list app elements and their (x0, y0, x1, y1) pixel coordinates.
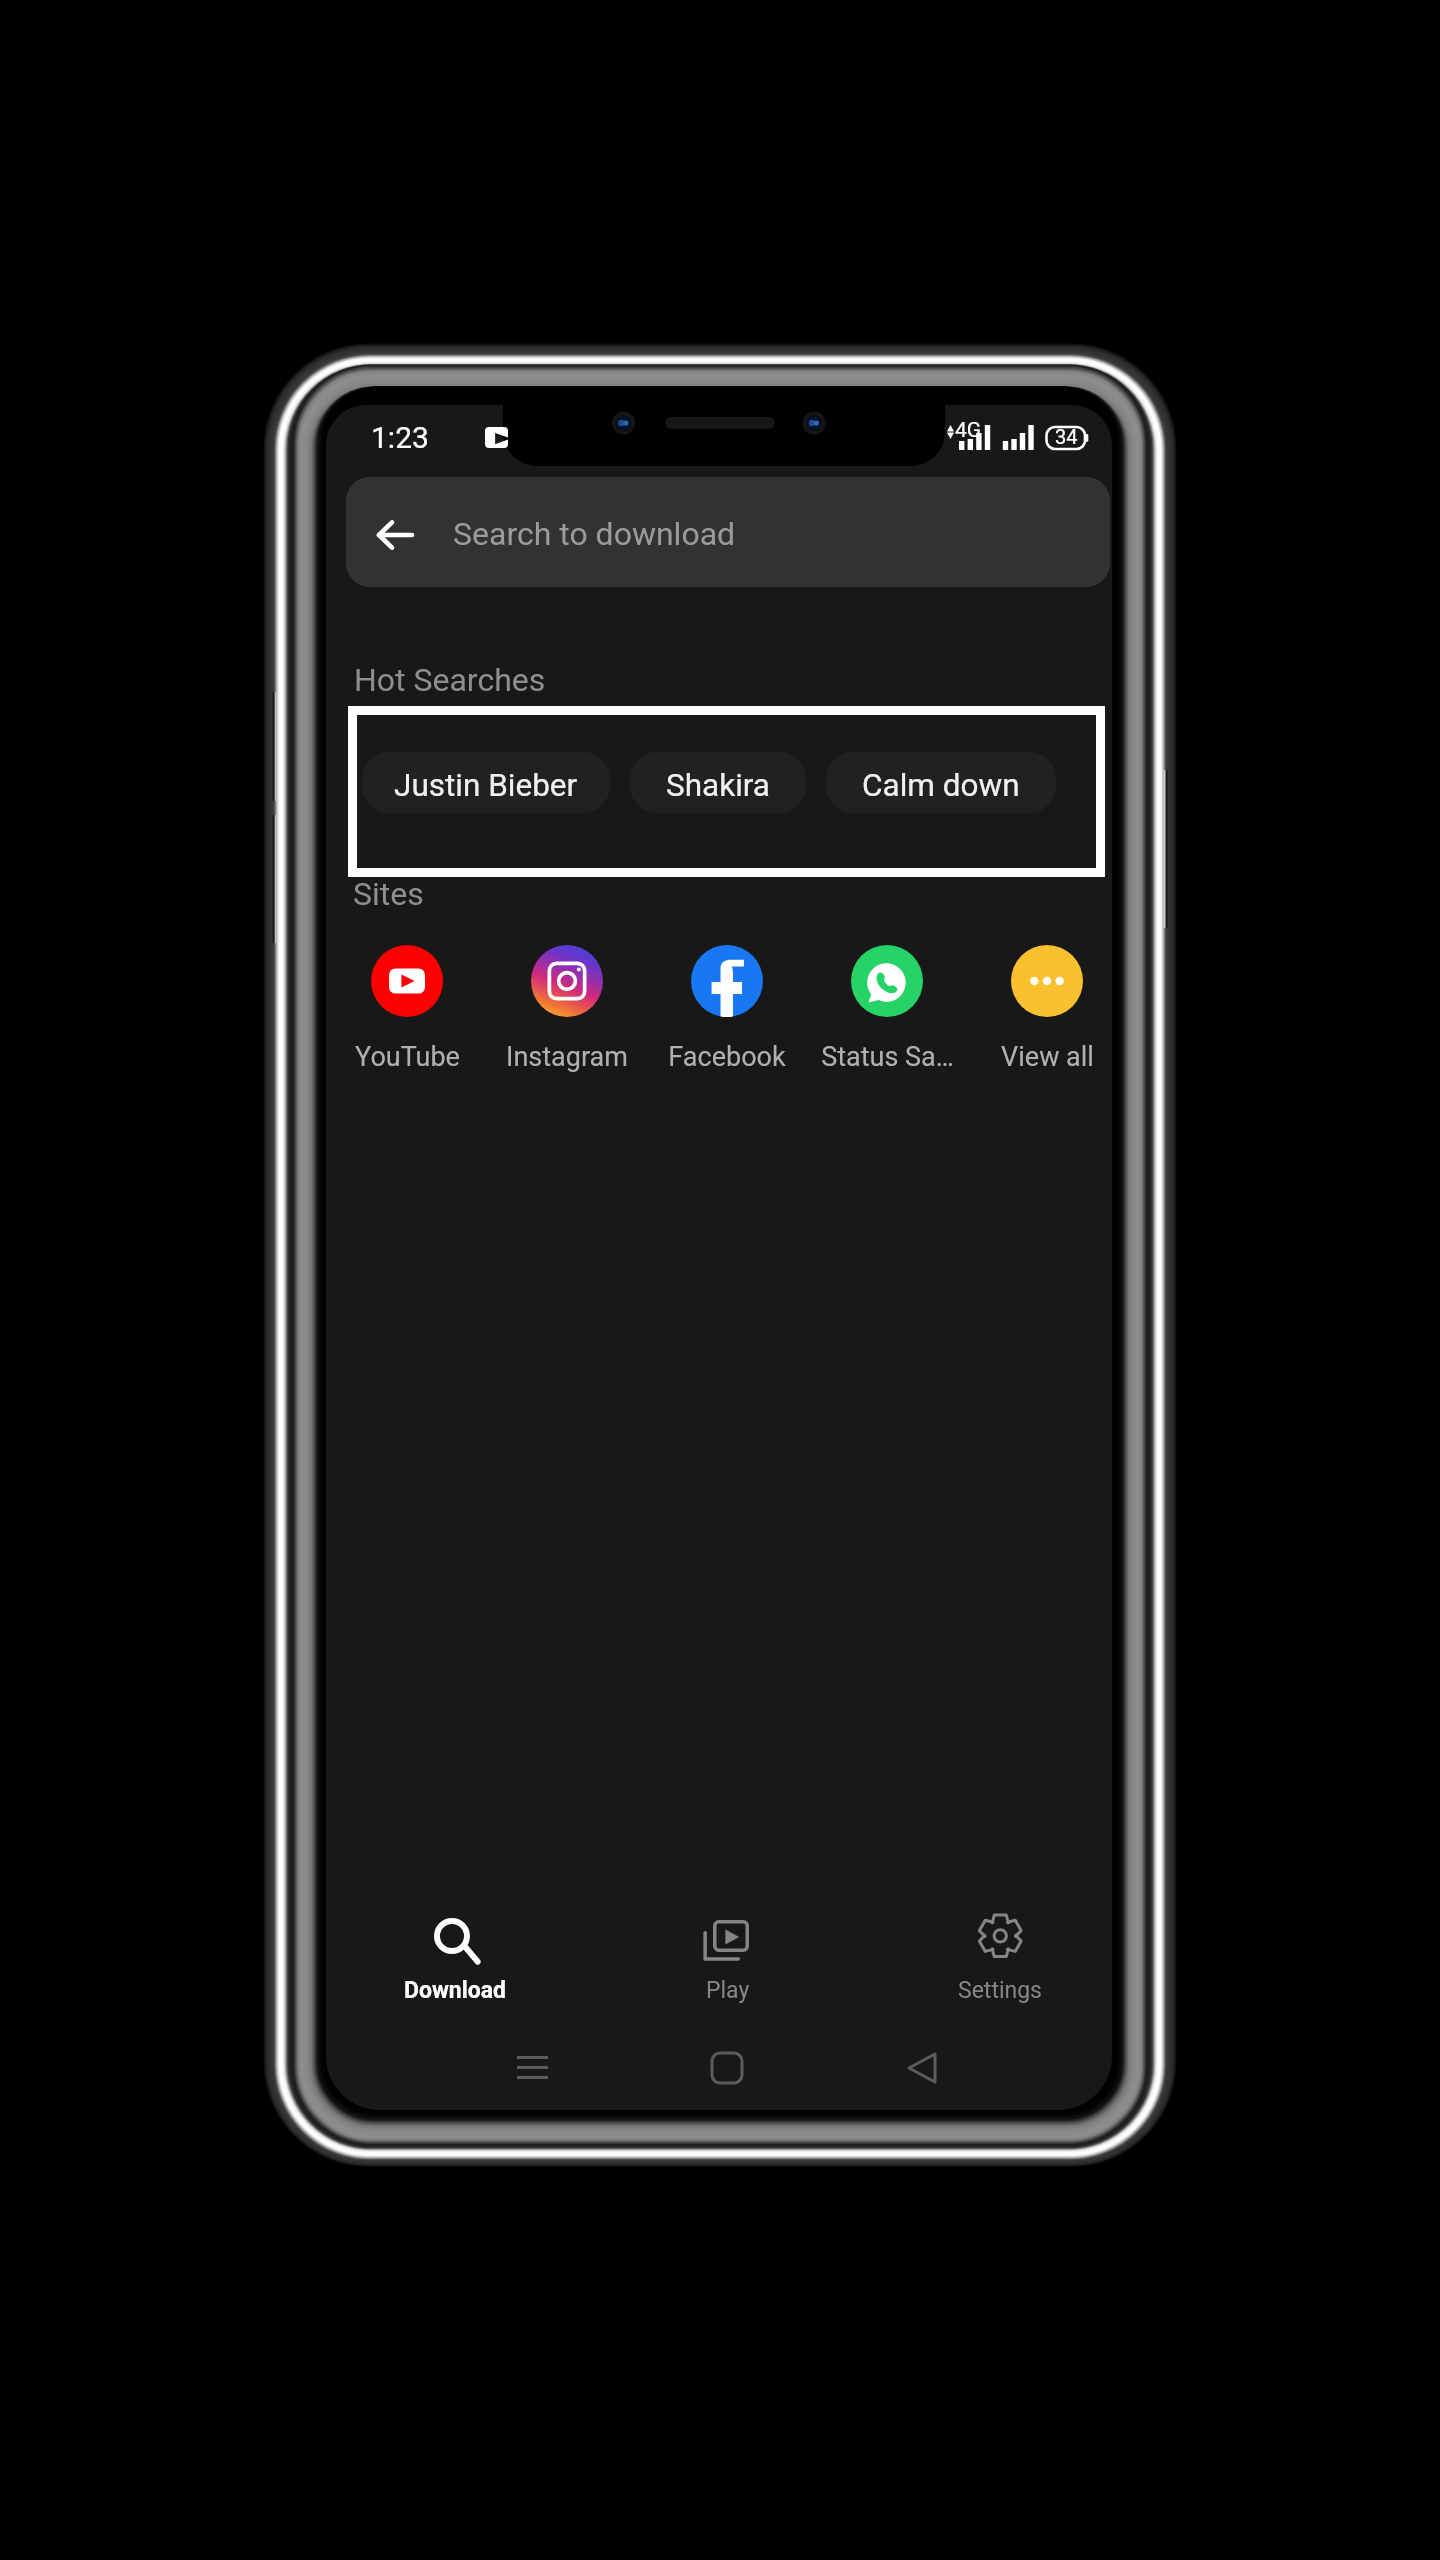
staticText: Shakira (666, 767, 771, 804)
button[interactable]: Back (360, 480, 430, 587)
staticText: Hot Searches (354, 661, 546, 699)
button[interactable]: YouTube (329, 945, 485, 1085)
staticText: Search to download (453, 515, 736, 553)
staticText: 4G (955, 418, 982, 443)
staticText: 34 (1055, 425, 1078, 448)
button[interactable]: Justin Bieber (362, 752, 610, 813)
staticText: Play (706, 1977, 750, 2004)
button[interactable]: Recents (492, 2027, 572, 2107)
staticText: Status Sa… (821, 1041, 954, 1073)
button[interactable]: Download (326, 1893, 585, 2018)
staticText: Download (404, 1977, 507, 2004)
button[interactable]: Calm down (826, 752, 1056, 813)
button[interactable]: Instagram (489, 945, 645, 1085)
button[interactable]: Play (598, 1893, 858, 2018)
button[interactable]: View all (969, 945, 1112, 1085)
staticText: Calm down (862, 767, 1020, 804)
button[interactable]: Shakira (630, 752, 806, 813)
button[interactable]: Status Sa… (809, 945, 965, 1085)
staticText: Justin Bieber (394, 767, 578, 804)
staticText: YouTube (355, 1041, 460, 1073)
staticText: Facebook (668, 1041, 786, 1073)
staticText: Settings (958, 1977, 1042, 2004)
button[interactable]: Home (687, 2028, 767, 2108)
button[interactable]: Settings (870, 1893, 1112, 2018)
staticText: Sites (353, 875, 424, 913)
staticText: View all (1001, 1041, 1094, 1073)
button[interactable]: Facebook (649, 945, 805, 1085)
button[interactable]: Back (346, 477, 1110, 587)
staticText: Instagram (506, 1041, 628, 1073)
button[interactable]: Back (882, 2028, 962, 2108)
staticText: 1:23 (371, 420, 429, 455)
